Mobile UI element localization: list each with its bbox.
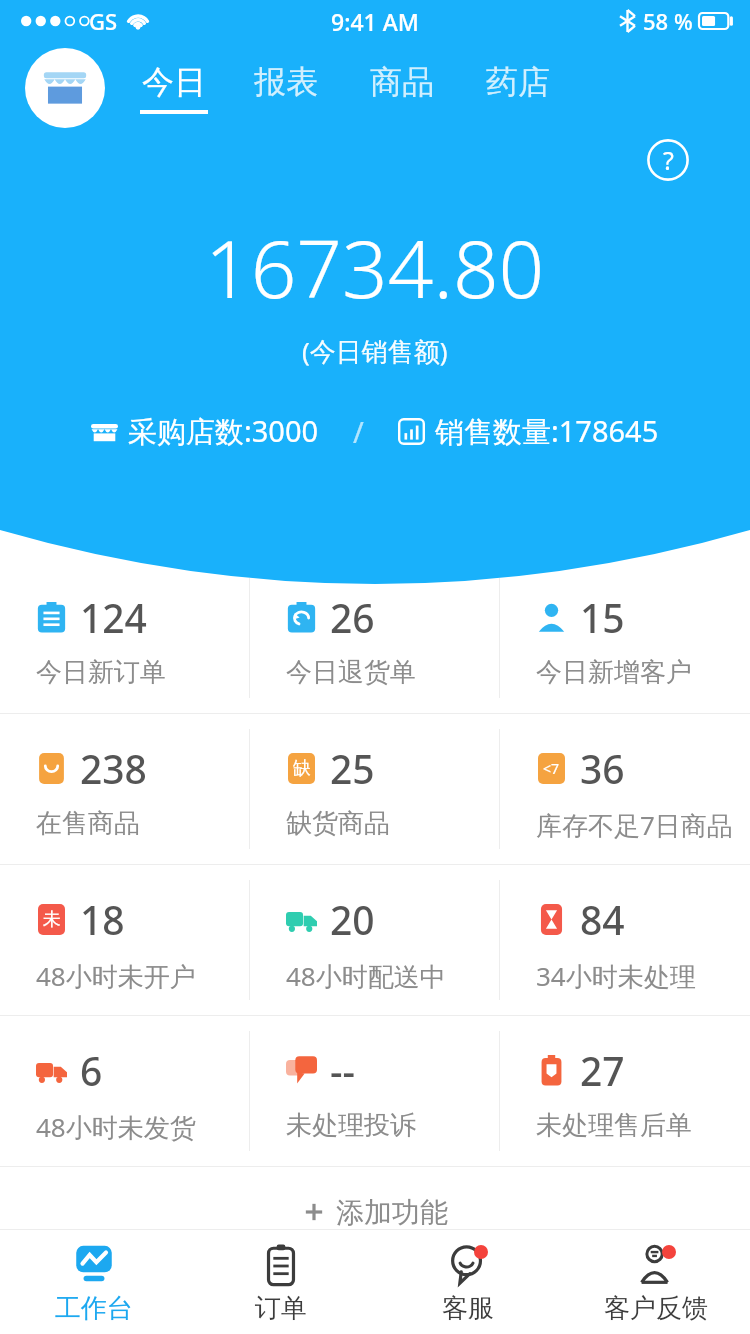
staticText: (今日销售额) xyxy=(302,333,448,369)
staticText: 84 xyxy=(580,893,625,946)
button[interactable]: 客服 xyxy=(374,1230,562,1334)
button[interactable]: 27 xyxy=(500,1016,750,1166)
staticText: 今日退货单 xyxy=(286,656,416,689)
staticText: 今日新增客户 xyxy=(536,656,692,689)
staticText: 18 xyxy=(80,893,125,946)
staticText: 在售商品 xyxy=(36,807,140,840)
button[interactable]: 商品 xyxy=(365,59,439,117)
staticText: 36 xyxy=(580,742,625,795)
staticText: <7 xyxy=(543,759,560,778)
button[interactable]: <7 xyxy=(500,714,750,864)
staticText: 58 % xyxy=(643,6,693,36)
button[interactable]: 20 xyxy=(250,865,500,1015)
button[interactable]: 添加功能 xyxy=(0,1195,750,1229)
staticText: 未处理投诉 xyxy=(286,1109,416,1142)
button[interactable]: 订单 xyxy=(187,1230,374,1334)
staticText: 124 xyxy=(80,591,147,644)
staticText: 今日 xyxy=(142,62,206,102)
button[interactable]: 工作台 xyxy=(0,1230,187,1334)
staticText: 25 xyxy=(330,742,375,795)
staticText: 销售数量:178645 xyxy=(435,411,659,451)
button[interactable]: 84 xyxy=(500,865,750,1015)
staticText: GS xyxy=(89,6,118,36)
staticText: 未 xyxy=(43,908,61,931)
staticText: / xyxy=(353,412,364,451)
staticText: 未处理售后单 xyxy=(536,1109,692,1142)
staticText: 报表 xyxy=(254,62,318,102)
staticText: 今日新订单 xyxy=(36,656,166,689)
staticText: 20 xyxy=(330,893,375,946)
staticText: 缺货商品 xyxy=(286,807,390,840)
staticText: 订单 xyxy=(255,1292,307,1325)
staticText: 34小时未处理 xyxy=(536,958,696,994)
staticText: 238 xyxy=(80,742,147,795)
button[interactable]: 26 xyxy=(250,563,500,713)
staticText: 48小时未开户 xyxy=(36,958,196,994)
staticText: 48小时未发货 xyxy=(36,1109,196,1145)
staticText: 添加功能 xyxy=(336,1195,448,1229)
staticText: 15 xyxy=(580,591,625,644)
button[interactable]: 客户反馈 xyxy=(562,1230,750,1334)
staticText: 药店 xyxy=(486,62,550,102)
staticText: 27 xyxy=(580,1044,625,1097)
button[interactable]: 6 xyxy=(0,1016,250,1166)
button[interactable]: Shop logo xyxy=(25,48,105,128)
button[interactable]: Help xyxy=(646,138,690,182)
staticText: ? xyxy=(663,143,674,177)
button[interactable]: 238 xyxy=(0,714,250,864)
staticText: 商品 xyxy=(370,62,434,102)
staticText: 48小时配送中 xyxy=(286,958,446,994)
button[interactable]: 15 xyxy=(500,563,750,713)
button[interactable]: 124 xyxy=(0,563,250,713)
staticText: 客户反馈 xyxy=(604,1292,708,1325)
staticText: 缺 xyxy=(293,757,311,780)
staticText: 26 xyxy=(330,591,375,644)
staticText: 工作台 xyxy=(55,1292,133,1325)
staticText: -- xyxy=(330,1044,356,1097)
button[interactable]: 今日 xyxy=(137,59,211,117)
staticText: 6 xyxy=(80,1044,103,1097)
staticText: 采购店数:3000 xyxy=(128,411,319,451)
staticText: 9:41 AM xyxy=(331,6,419,37)
staticText: 客服 xyxy=(442,1292,494,1325)
button[interactable]: 未 xyxy=(0,865,250,1015)
button[interactable]: 报表 xyxy=(249,59,323,117)
button[interactable]: -- xyxy=(250,1016,500,1166)
button[interactable]: 药店 xyxy=(481,59,555,117)
button[interactable]: 缺 xyxy=(250,714,500,864)
staticText: 库存不足7日商品 xyxy=(536,807,733,843)
staticText: 16734.80 xyxy=(205,212,545,321)
